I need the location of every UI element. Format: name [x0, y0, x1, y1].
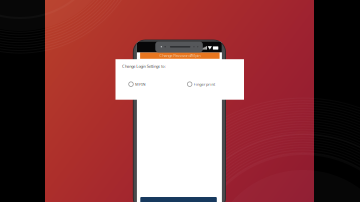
button[interactable]: MPIN [129, 81, 146, 87]
staticText: Change Password/Mpin [159, 53, 200, 58]
staticText: Change Login Settings to : [122, 64, 166, 69]
staticText: Fingerprint [194, 81, 215, 87]
button[interactable]: Fingerprint [187, 81, 215, 87]
staticText: MPIN [135, 81, 146, 87]
